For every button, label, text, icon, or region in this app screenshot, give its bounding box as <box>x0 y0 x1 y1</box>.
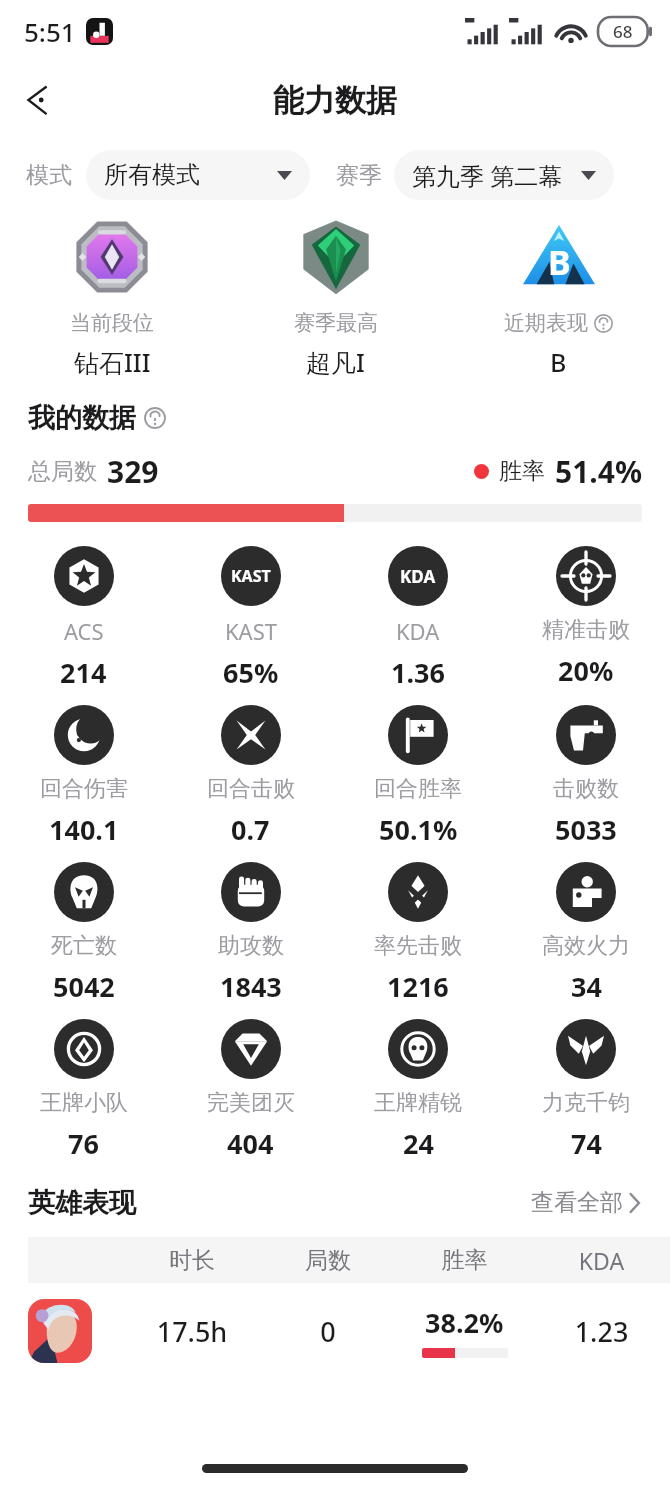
staticText: 王牌小队 <box>40 1089 128 1117</box>
staticText: 1.23 <box>533 1313 670 1350</box>
button[interactable]: 死亡数 <box>0 862 167 1005</box>
button[interactable]: KAST <box>167 546 334 691</box>
staticText: 74 <box>571 1125 602 1162</box>
staticText: 20% <box>558 652 614 689</box>
staticText: 赛季最高 <box>294 310 378 336</box>
button[interactable]: 回合伤害 <box>0 705 167 848</box>
staticText: 率先击败 <box>374 932 462 960</box>
staticText: 所有模式 <box>104 160 200 190</box>
staticText: KAST <box>225 616 277 646</box>
staticText: 76 <box>68 1125 99 1162</box>
staticText: 0.7 <box>231 811 270 848</box>
staticText: 65% <box>223 654 279 691</box>
button[interactable]: 力克千钧 <box>502 1019 670 1162</box>
button[interactable]: KDA <box>334 546 502 691</box>
button[interactable]: 第九季 第二幕 <box>394 150 614 200</box>
staticText: 5:51 <box>24 14 76 49</box>
staticText: KDA <box>533 1245 670 1276</box>
staticText: KDA <box>400 565 436 588</box>
staticText: 王牌精锐 <box>374 1089 462 1117</box>
button[interactable]: 回合击败 <box>167 705 334 848</box>
staticText: 50.1% <box>379 811 458 848</box>
staticText: 力克千钧 <box>542 1089 630 1117</box>
button[interactable]: 回合胜率 <box>334 705 502 848</box>
staticText: 34 <box>571 968 602 1005</box>
button[interactable]: 王牌精锐 <box>334 1019 502 1162</box>
staticText: 助攻数 <box>218 932 284 960</box>
button[interactable]: 赛季最高 <box>224 214 447 379</box>
staticText: 时长 <box>124 1246 260 1275</box>
button[interactable]: 高效火力 <box>502 862 670 1005</box>
staticText: 第九季 第二幕 <box>412 159 563 192</box>
button[interactable]: 17.5h <box>0 1283 670 1379</box>
button[interactable]: 精准击败 <box>502 546 670 689</box>
staticText: 精准击败 <box>542 616 630 644</box>
staticText: 1.36 <box>391 654 445 691</box>
staticText: 17.5h <box>124 1313 260 1350</box>
button[interactable]: 击败数 <box>502 705 670 848</box>
button[interactable]: 查看全部 <box>525 1182 646 1223</box>
staticText: 高效火力 <box>542 932 630 960</box>
button[interactable]: 助攻数 <box>167 862 334 1005</box>
staticText: 140.1 <box>49 811 119 848</box>
button[interactable]: 所有模式 <box>86 150 310 200</box>
staticText: 死亡数 <box>51 932 117 960</box>
staticText: 回合伤害 <box>40 775 128 803</box>
staticText: 总局数 <box>28 457 97 486</box>
staticText: 404 <box>227 1125 274 1162</box>
button[interactable]: B <box>447 214 670 379</box>
staticText: 回合击败 <box>207 775 295 803</box>
staticText: 5033 <box>555 811 617 848</box>
button[interactable]: 当前段位 <box>0 214 224 379</box>
staticText: 24 <box>403 1125 434 1162</box>
staticText: 局数 <box>260 1246 396 1275</box>
staticText: 赛季 <box>336 161 382 190</box>
staticText: 近期表现 <box>504 310 588 336</box>
staticText: 胜率 <box>396 1246 533 1275</box>
staticText: 当前段位 <box>70 310 154 336</box>
staticText: 51.4% <box>555 451 642 492</box>
staticText: 0 <box>260 1313 396 1350</box>
staticText: 击败数 <box>553 775 619 803</box>
staticText: 回合胜率 <box>374 775 462 803</box>
staticText: 我的数据 <box>28 401 136 435</box>
staticText: 1216 <box>387 968 449 1005</box>
staticText: 38.2% <box>425 1304 504 1341</box>
staticText: 214 <box>60 654 107 691</box>
staticText: B <box>548 239 571 285</box>
button[interactable]: 王牌小队 <box>0 1019 167 1162</box>
staticText: 超凡I <box>306 345 365 379</box>
staticText: 329 <box>107 451 159 492</box>
staticText: KDA <box>396 616 440 646</box>
staticText: B <box>550 345 567 379</box>
staticText: 模式 <box>26 161 72 190</box>
button[interactable]: Back <box>8 70 68 130</box>
staticText: 5042 <box>53 968 115 1005</box>
staticText: ACS <box>64 616 104 646</box>
button[interactable]: ACS <box>0 546 167 691</box>
staticText: 68 <box>613 20 633 43</box>
staticText: 英雄表现 <box>28 1186 136 1220</box>
button[interactable]: 率先击败 <box>334 862 502 1005</box>
staticText: 胜率 <box>499 457 545 486</box>
staticText: KAST <box>231 565 271 587</box>
staticText: 完美团灭 <box>207 1089 295 1117</box>
staticText: 钻石III <box>74 345 151 379</box>
staticText: 能力数据 <box>273 81 397 120</box>
staticText: 查看全部 <box>531 1188 623 1217</box>
button[interactable]: 完美团灭 <box>167 1019 334 1162</box>
staticText: 1843 <box>220 968 282 1005</box>
